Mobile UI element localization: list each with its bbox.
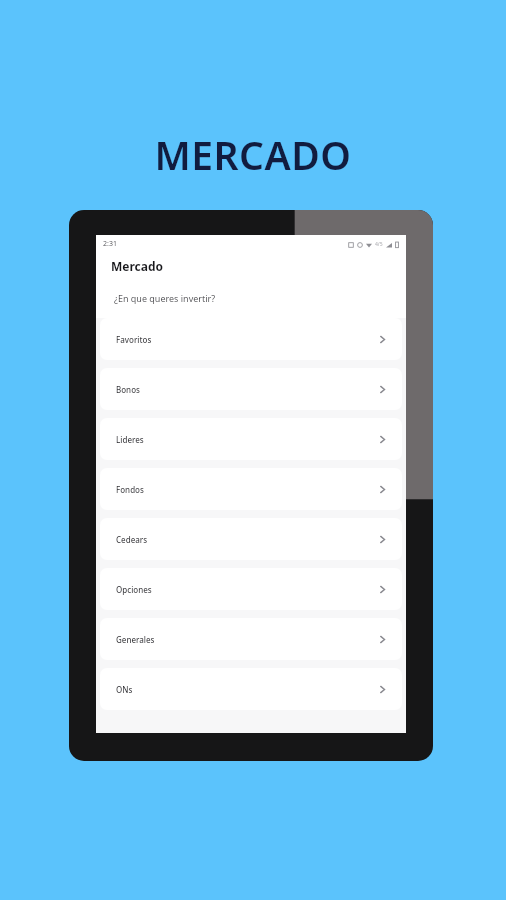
staticText: ¿En que queres invertir?	[114, 292, 216, 304]
staticText: MERCADO	[0, 128, 506, 181]
staticText: Lideres	[116, 434, 144, 445]
button[interactable]: Cedears	[100, 518, 402, 560]
staticText: 2:31	[103, 239, 117, 249]
staticText: ONs	[116, 684, 133, 695]
staticText: Opciones	[116, 584, 152, 595]
button[interactable]: ONs	[100, 668, 402, 710]
staticText: Fondos	[116, 484, 144, 495]
staticText: Generales	[116, 634, 155, 645]
button[interactable]: Favoritos	[100, 318, 402, 360]
staticText: 4/5	[375, 241, 383, 248]
button[interactable]: Fondos	[100, 468, 402, 510]
staticText: Bonos	[116, 384, 140, 395]
staticText: Mercado	[111, 258, 164, 274]
button[interactable]: Lideres	[100, 418, 402, 460]
staticText: Favoritos	[116, 334, 152, 345]
button[interactable]: Bonos	[100, 368, 402, 410]
button[interactable]: Opciones	[100, 568, 402, 610]
button[interactable]: Generales	[100, 618, 402, 660]
staticText: Cedears	[116, 534, 148, 545]
